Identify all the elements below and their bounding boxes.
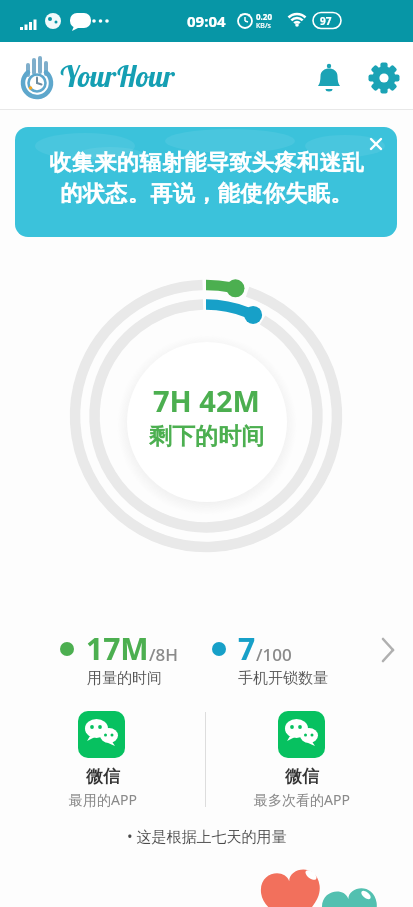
button[interactable]: 收集来的辐射能导致头疼和迷乱 bbox=[15, 127, 397, 237]
button[interactable] bbox=[312, 62, 346, 96]
staticText: 09:04 bbox=[187, 11, 226, 31]
staticText: 手机开锁数量 bbox=[238, 669, 328, 688]
staticText: 收集来的辐射能导致头疼和迷乱 bbox=[49, 149, 364, 177]
staticText: 剩下的时间 bbox=[149, 422, 264, 451]
button[interactable] bbox=[366, 60, 402, 96]
staticText: YourHour bbox=[59, 58, 175, 94]
staticText: 7 bbox=[238, 628, 256, 669]
staticText: 17M bbox=[86, 628, 149, 669]
staticText: 微信 bbox=[86, 766, 120, 787]
staticText: 7H 42M bbox=[153, 381, 260, 420]
staticText: 97 bbox=[320, 14, 332, 28]
staticText: 用量的时间 bbox=[87, 669, 162, 688]
staticText: 最多次看的APP bbox=[254, 790, 350, 809]
button[interactable]: 17M bbox=[40, 622, 400, 694]
staticText: /100 bbox=[256, 643, 292, 666]
staticText: 0.20 bbox=[256, 11, 272, 22]
staticText: 的状态。再说，能使你失眠。 bbox=[60, 180, 353, 208]
staticText: KB/s bbox=[256, 21, 271, 31]
staticText: 微信 bbox=[285, 766, 319, 787]
staticText: /8H bbox=[149, 643, 178, 666]
button[interactable]: 微信 bbox=[239, 708, 365, 810]
staticText: • 这是根据上七天的用量 bbox=[127, 826, 287, 846]
staticText: 最用的APP bbox=[69, 790, 137, 809]
button[interactable]: 微信 bbox=[40, 708, 166, 810]
button[interactable] bbox=[363, 131, 389, 157]
